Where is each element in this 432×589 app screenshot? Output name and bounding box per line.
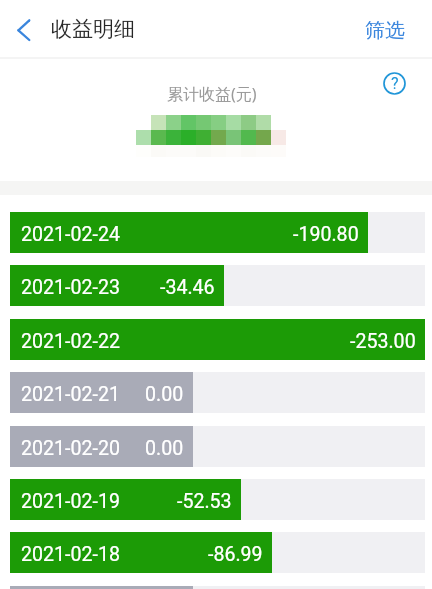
staticText: 2021-02-21 — [21, 383, 120, 406]
button[interactable]: 2021-02-17 — [0, 586, 432, 589]
button[interactable]: 2021-02-23 — [0, 265, 432, 306]
staticText: 0.00 — [145, 383, 184, 406]
button[interactable]: Back — [0, 1, 42, 59]
button[interactable]: 2021-02-24 — [0, 212, 432, 253]
staticText: 2021-02-22 — [21, 330, 120, 353]
button[interactable]: 2021-02-20 — [0, 426, 432, 467]
staticText: 收益明细 — [51, 16, 135, 42]
staticText: -253.00 — [350, 330, 416, 353]
staticText: ? — [391, 74, 399, 93]
staticText: 2021-02-18 — [21, 543, 120, 566]
staticText: 2021-02-20 — [21, 437, 120, 460]
button[interactable]: 2021-02-22 — [0, 319, 432, 360]
staticText: 累计收益(元) — [167, 83, 257, 105]
staticText: -34.46 — [160, 276, 215, 299]
staticText: 2021-02-23 — [21, 276, 120, 299]
button[interactable]: 2021-02-21 — [0, 372, 432, 413]
staticText: 筛选 — [365, 18, 405, 43]
staticText: 0.00 — [145, 437, 184, 460]
button[interactable]: 筛选 — [365, 1, 405, 59]
button[interactable]: 2021-02-18 — [0, 532, 432, 573]
button[interactable]: Help — [376, 65, 413, 102]
staticText: -52.53 — [177, 490, 232, 513]
staticText: -190.80 — [293, 223, 359, 246]
staticText: -86.99 — [208, 543, 263, 566]
staticText: 2021-02-24 — [21, 223, 120, 246]
staticText: 2021-02-19 — [21, 490, 120, 513]
button[interactable]: 2021-02-19 — [0, 479, 432, 520]
